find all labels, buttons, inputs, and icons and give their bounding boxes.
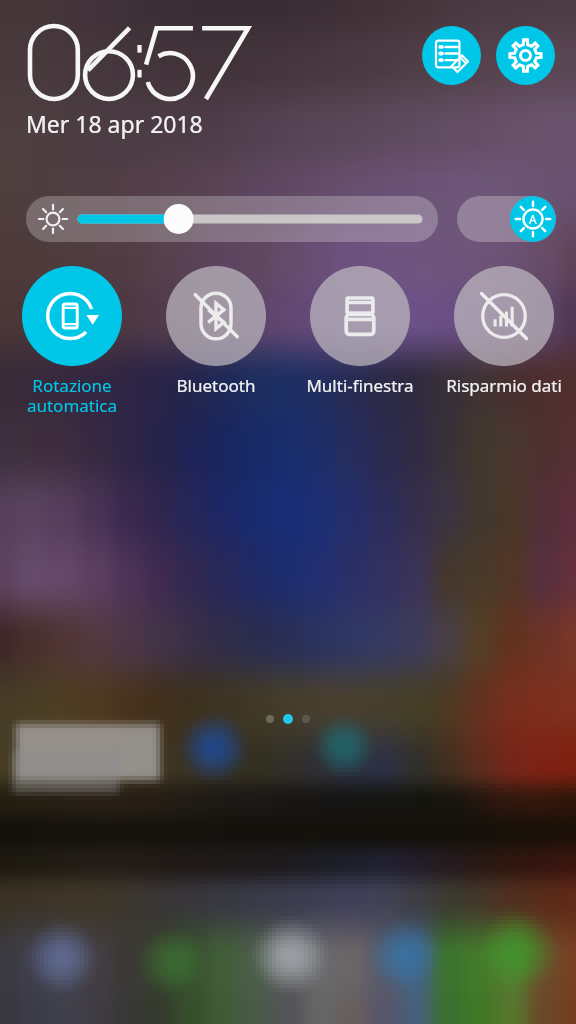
button[interactable]: Settings — [496, 26, 555, 85]
button[interactable]: Bluetooth — [144, 266, 288, 397]
button[interactable]: Rotazione automatica — [0, 266, 144, 417]
button[interactable] — [26, 196, 438, 242]
button[interactable]: Notes — [422, 26, 481, 85]
button[interactable]: Multi-finestra — [288, 266, 432, 397]
staticText: A — [529, 211, 537, 227]
button[interactable]: Risparmio dati — [432, 266, 576, 397]
staticText: Bluetooth — [146, 374, 286, 397]
staticText: Risparmio dati — [434, 374, 574, 397]
button[interactable]: Auto brightness — [457, 196, 556, 242]
staticText: Multi-finestra — [290, 374, 430, 397]
staticText: Rotazione automatica — [2, 374, 142, 417]
staticText: Mer 18 apr 2018 — [26, 108, 203, 139]
